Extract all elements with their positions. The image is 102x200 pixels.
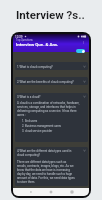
other: Expand — [83, 65, 86, 68]
button[interactable]: 1.What is cloud computing? — [15, 62, 88, 70]
staticText: 1.What is cloud computing? — [17, 65, 83, 68]
staticText: 4.What are the different data types used… — [17, 149, 83, 157]
staticText: Interview ?s.. — [16, 8, 85, 21]
staticText: 1. End users 2. Business management user… — [22, 119, 62, 132]
button[interactable]: Dark mode toggle — [76, 49, 85, 53]
button[interactable]: Home — [48, 189, 54, 195]
staticText: 12:39 — [15, 35, 23, 39]
button[interactable]: Recents — [69, 189, 75, 195]
staticText: Top Questions — [16, 39, 33, 42]
button[interactable]: 2.What are the benefits of cloud computi… — [15, 77, 88, 85]
button[interactable]: Back — [28, 189, 34, 195]
button[interactable]: 4.What are the different data types used… — [15, 147, 88, 186]
button[interactable]: More options — [81, 39, 86, 45]
staticText: 2.What are the benefits of cloud computi… — [17, 80, 83, 83]
staticText: There are different data types such as e… — [17, 160, 75, 184]
other: Expand — [83, 95, 86, 98]
staticText: Interview Que. & Ans. — [16, 42, 59, 47]
other: Expand — [83, 80, 86, 83]
staticText: A cloud is a combination of networks, ha… — [17, 101, 80, 117]
button[interactable]: 3.What is a cloud? — [15, 93, 88, 142]
staticText: 3.What is a cloud? — [17, 95, 83, 98]
other: Expand — [83, 149, 86, 152]
